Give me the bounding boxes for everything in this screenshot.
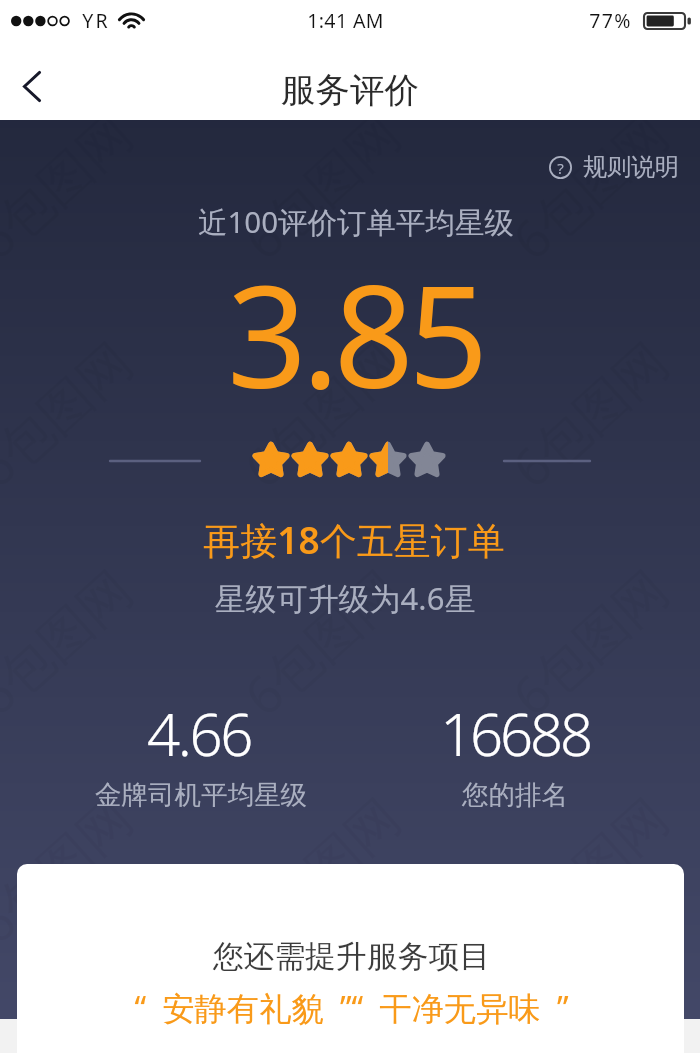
staticText: 6包图网 <box>228 781 414 958</box>
staticText: 再接18个五星订单 <box>4 514 700 565</box>
staticText: 服务评价 <box>0 69 700 112</box>
staticText: 6包图网 <box>228 325 414 502</box>
staticText: 6包图网 <box>228 1009 414 1053</box>
staticText: 6包图网 <box>496 97 682 274</box>
staticText: 6包图网 <box>496 1009 682 1053</box>
staticText: 6包图网 <box>0 1009 146 1053</box>
staticText: 金牌司机平均星级 <box>71 778 331 811</box>
staticText: 6包图网 <box>228 97 414 274</box>
staticText: 6包图网 <box>0 781 146 958</box>
button[interactable]: 您还需提升服务项目 <box>17 864 684 1053</box>
button[interactable]: Back <box>6 61 54 109</box>
staticText: 6包图网 <box>228 553 414 730</box>
staticText: 6包图网 <box>496 325 682 502</box>
staticText: 6包图网 <box>496 553 682 730</box>
staticText: 4.66 <box>99 694 299 773</box>
staticText: 6包图网 <box>0 97 146 274</box>
staticText: ? <box>557 158 564 178</box>
staticText: 1:41 AM <box>307 7 384 34</box>
staticText: “ 安静有礼貌 ”“ 干净无异味 ” <box>18 985 684 1029</box>
staticText: 近100评价订单平均星级 <box>6 201 700 241</box>
staticText: 6包图网 <box>0 325 146 502</box>
button[interactable]: ? <box>543 148 685 186</box>
staticText: 77% <box>589 7 632 34</box>
staticText: 星级可升级为4.6星 <box>0 577 695 619</box>
staticText: 规则说明 <box>583 152 679 182</box>
staticText: 3.85 <box>5 238 700 429</box>
staticText: 16688 <box>415 694 615 773</box>
staticText: 您还需提升服务项目 <box>18 937 684 976</box>
staticText: 您的排名 <box>385 778 645 811</box>
staticText: YR <box>82 7 110 34</box>
staticText: 6包图网 <box>496 781 682 958</box>
